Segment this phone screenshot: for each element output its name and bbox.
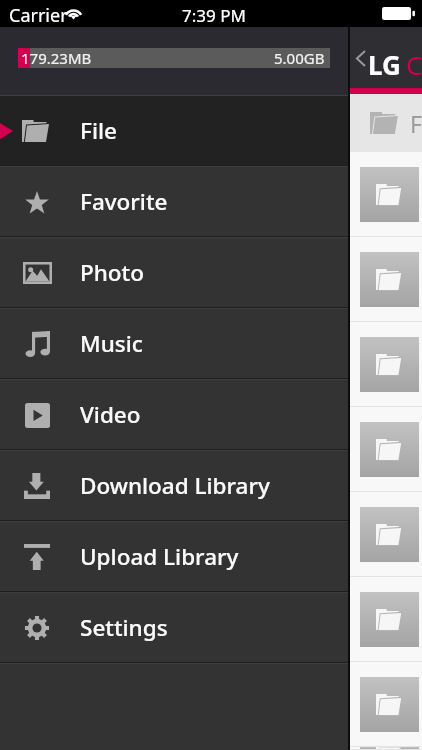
button[interactable] (0, 492, 422, 577)
staticText: File (410, 108, 422, 139)
button[interactable]: Upload Library (0, 522, 348, 591)
staticText: Photo (80, 257, 144, 288)
button[interactable]: Back (348, 48, 372, 68)
button[interactable]: Photo (0, 238, 348, 307)
staticText: Upload Library (80, 541, 239, 572)
button[interactable] (0, 322, 422, 407)
staticText: File (80, 115, 117, 146)
button[interactable]: Video (0, 380, 348, 449)
staticText: 5.00GB (274, 48, 325, 68)
staticText: Music (80, 328, 143, 359)
staticText: Video (80, 399, 141, 430)
button[interactable]: Download Library (0, 451, 348, 520)
staticText: LG (368, 47, 401, 82)
button[interactable] (0, 747, 422, 750)
button[interactable]: 179.23MB (18, 48, 330, 68)
button[interactable]: Music (0, 309, 348, 378)
button[interactable] (0, 407, 422, 492)
button[interactable] (0, 577, 422, 662)
button[interactable]: Favorite (0, 167, 348, 236)
button[interactable] (0, 237, 422, 322)
staticText: Carrier (9, 3, 68, 28)
staticText: Download Library (80, 470, 270, 501)
button[interactable] (0, 662, 422, 747)
staticText: 179.23MB (21, 48, 92, 68)
staticText: Cloud (406, 47, 422, 82)
staticText: 7:39 PM (182, 4, 246, 27)
button[interactable]: File (0, 96, 348, 165)
button[interactable]: Settings (0, 593, 348, 662)
staticText: Settings (80, 612, 168, 643)
staticText: Favorite (80, 186, 168, 217)
button[interactable] (0, 152, 422, 237)
